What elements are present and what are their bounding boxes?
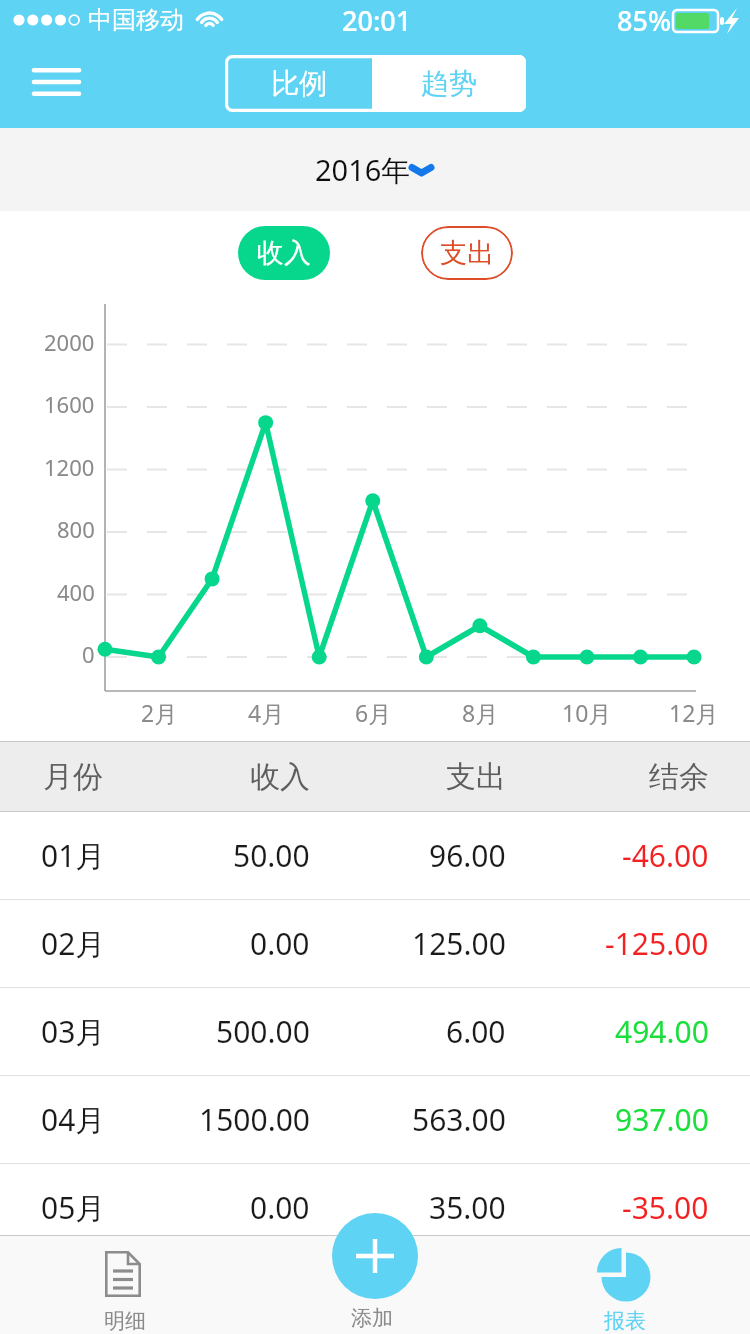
staticText: 85% (617, 2, 671, 39)
staticText: 500.00 (216, 1011, 310, 1052)
staticText: 96.00 (429, 835, 506, 876)
staticText: 明细 (104, 1308, 146, 1334)
staticText: 50.00 (233, 835, 310, 876)
staticText: 02月 (41, 923, 106, 964)
button[interactable]: 05月 (0, 1164, 750, 1251)
staticText: 937.00 (615, 1099, 709, 1140)
staticText: 报表 (604, 1308, 646, 1334)
staticText: 比例 (271, 66, 327, 101)
staticText: 400 (57, 577, 95, 607)
staticText: 4月 (248, 697, 285, 728)
staticText: 2016年 (315, 150, 411, 190)
staticText: 0.00 (250, 1187, 310, 1228)
button[interactable]: Add (332, 1213, 418, 1299)
staticText: 20:01 (342, 2, 412, 39)
staticText: 添加 (351, 1305, 393, 1331)
staticText: 05月 (41, 1187, 106, 1228)
staticText: 0.00 (250, 923, 310, 964)
staticText: 8月 (462, 697, 499, 728)
staticText: 中国移动 (88, 5, 184, 35)
staticText: 494.00 (615, 1011, 709, 1052)
staticText: -46.00 (622, 835, 709, 876)
staticText: 10月 (562, 697, 612, 728)
button[interactable]: 收入 (238, 226, 330, 280)
staticText: 12月 (669, 697, 719, 728)
staticText: 结余 (649, 758, 709, 796)
staticText: 1200 (44, 452, 95, 482)
staticText: 04月 (41, 1099, 106, 1140)
staticText: 800 (57, 514, 95, 544)
staticText: 01月 (41, 835, 106, 876)
button[interactable]: 01月 (0, 812, 750, 899)
staticText: 支出 (440, 236, 494, 270)
staticText: 1600 (44, 389, 95, 419)
staticText: 6.00 (446, 1011, 506, 1052)
staticText: -35.00 (622, 1187, 709, 1228)
button[interactable]: 03月 (0, 988, 750, 1075)
staticText: -125.00 (605, 923, 709, 964)
button[interactable]: 04月 (0, 1076, 750, 1163)
button[interactable]: 报表 (544, 1236, 706, 1334)
staticText: 03月 (41, 1011, 106, 1052)
button[interactable]: 趋势 (372, 55, 526, 112)
button[interactable]: 2016年 (0, 128, 750, 211)
staticText: 收入 (257, 236, 311, 270)
button[interactable]: 明细 (44, 1236, 206, 1334)
staticText: 2000 (44, 327, 95, 357)
staticText: 1500.00 (199, 1099, 310, 1140)
staticText: 支出 (446, 758, 506, 796)
staticText: 收入 (250, 758, 310, 796)
staticText: 趋势 (421, 66, 477, 101)
staticText: 125.00 (412, 923, 506, 964)
button[interactable]: 02月 (0, 900, 750, 987)
button[interactable]: Menu (14, 53, 94, 113)
staticText: 6月 (355, 697, 392, 728)
staticText: 月份 (43, 758, 103, 796)
button[interactable]: 比例 (225, 55, 372, 112)
staticText: 0 (82, 639, 95, 669)
staticText: 35.00 (429, 1187, 506, 1228)
staticText: 563.00 (412, 1099, 506, 1140)
staticText: 2月 (141, 697, 178, 728)
button[interactable]: 支出 (421, 226, 513, 280)
